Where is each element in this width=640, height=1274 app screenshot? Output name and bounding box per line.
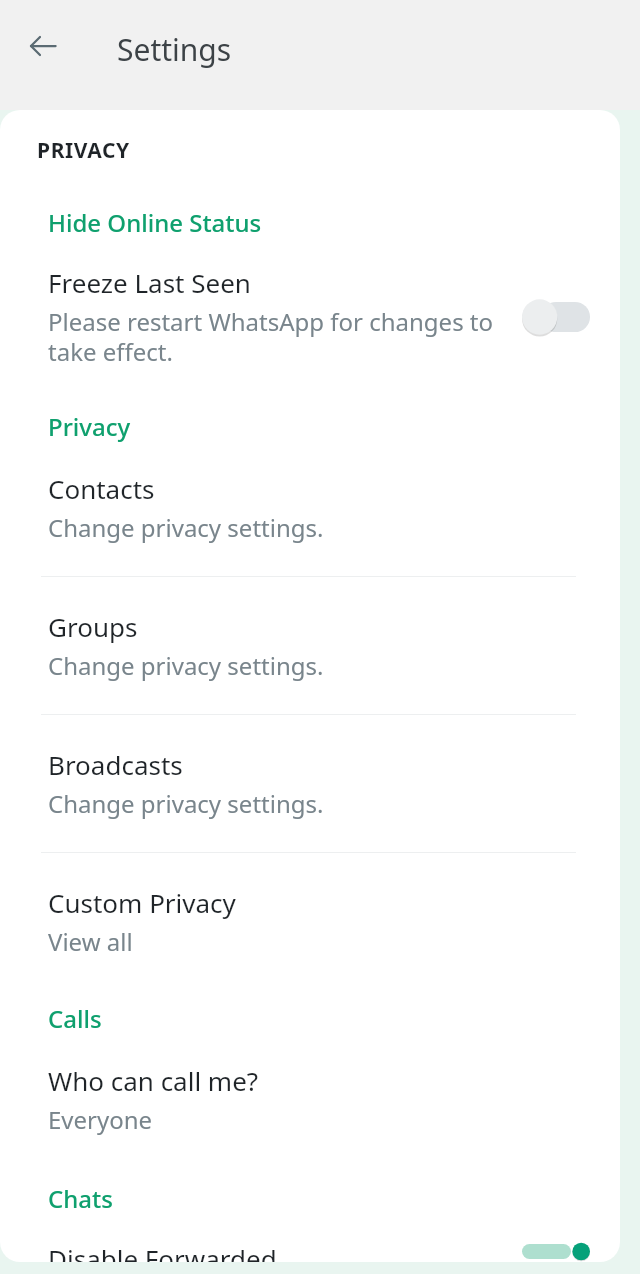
button[interactable]: Broadcasts xyxy=(0,747,620,820)
staticText: Settings xyxy=(117,29,232,70)
staticText: Everyone xyxy=(48,1103,153,1136)
staticText: Freeze Last Seen xyxy=(48,265,251,300)
button[interactable]: Who can call me? xyxy=(0,1063,620,1136)
staticText: Broadcasts xyxy=(48,747,183,782)
staticText: Change privacy settings. xyxy=(48,649,324,682)
staticText: Calls xyxy=(48,1002,102,1035)
staticText: Chats xyxy=(48,1182,113,1215)
staticText: PRIVACY xyxy=(37,136,130,165)
staticText: Disable Forwarded xyxy=(48,1241,277,1262)
button[interactable]: Toggle off xyxy=(522,296,590,338)
staticText: Custom Privacy xyxy=(48,885,236,920)
button[interactable]: Contacts xyxy=(0,471,620,544)
button[interactable]: Back xyxy=(13,16,73,76)
staticText: Who can call me? xyxy=(48,1063,259,1098)
staticText: Groups xyxy=(48,609,138,644)
button[interactable]: Custom Privacy xyxy=(0,885,620,958)
button[interactable]: Toggle on xyxy=(522,1241,590,1262)
button[interactable]: Groups xyxy=(0,609,620,682)
staticText: Contacts xyxy=(48,471,155,506)
staticText: Change privacy settings. xyxy=(48,511,324,544)
staticText: Hide Online Status xyxy=(48,206,262,239)
staticText: Please restart WhatsApp for changes to t… xyxy=(48,305,494,368)
staticText: Privacy xyxy=(48,410,131,443)
button[interactable]: Freeze Last Seen xyxy=(0,265,620,368)
staticText: Change privacy settings. xyxy=(48,787,324,820)
staticText: View all xyxy=(48,925,133,958)
button[interactable]: Disable Forwarded xyxy=(0,1241,620,1262)
